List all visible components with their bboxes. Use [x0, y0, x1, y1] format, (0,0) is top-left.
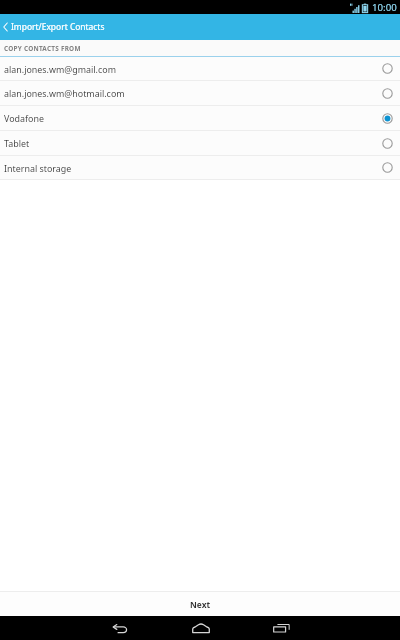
button[interactable]: Home — [160, 616, 241, 640]
button[interactable]: Tablet — [0, 131, 400, 155]
button[interactable]: alan.jones.wm@hotmail.com — [0, 81, 400, 105]
button[interactable]: Import/Export Contacts — [0, 14, 400, 40]
staticText: alan.jones.wm@hotmail.com — [4, 87, 125, 99]
staticText: COPY CONTACTS FROM — [4, 44, 81, 53]
staticText: Import/Export Contacts — [11, 21, 105, 33]
staticText: Internal storage — [4, 162, 72, 174]
staticText: Vodafone — [4, 112, 44, 124]
button[interactable]: Back — [79, 616, 160, 640]
button[interactable]: Next — [0, 592, 400, 616]
button[interactable]: Recent apps — [241, 616, 322, 640]
staticText: 10:00 — [372, 1, 397, 14]
button[interactable]: Internal storage — [0, 156, 400, 179]
staticText: Tablet — [4, 137, 30, 149]
staticText: alan.jones.wm@gmail.com — [4, 63, 116, 75]
staticText: Next — [190, 599, 211, 610]
button[interactable]: Vodafone — [0, 106, 400, 130]
button[interactable]: alan.jones.wm@gmail.com — [0, 57, 400, 80]
